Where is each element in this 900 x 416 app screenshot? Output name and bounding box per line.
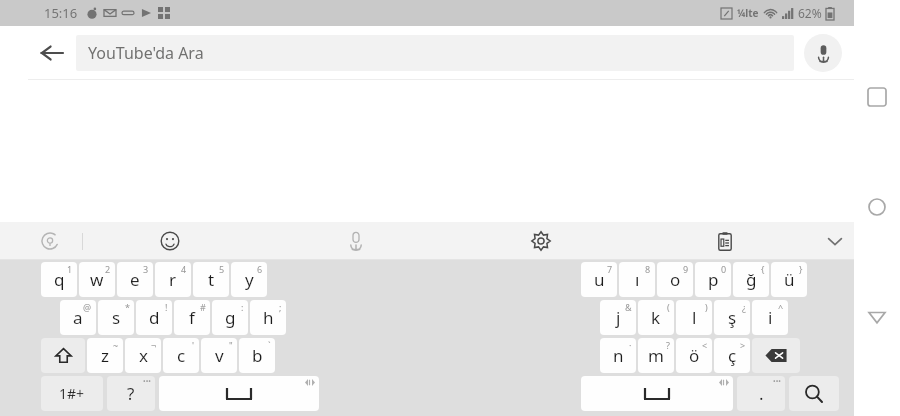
button[interactable]: y xyxy=(231,262,267,297)
staticText: z xyxy=(101,344,109,367)
staticText: @ xyxy=(83,301,92,313)
button[interactable]: f xyxy=(174,300,210,335)
staticText: c xyxy=(177,344,186,367)
staticText: ? xyxy=(127,382,135,405)
staticText: ; xyxy=(279,301,282,313)
staticText: 5 xyxy=(219,263,225,275)
button[interactable]: Back xyxy=(28,29,76,77)
button[interactable]: t xyxy=(193,262,229,297)
button[interactable]: w xyxy=(79,262,115,297)
staticText: m xyxy=(648,344,664,367)
staticText: u xyxy=(594,268,605,291)
staticText: i xyxy=(768,306,773,329)
button[interactable]: v xyxy=(201,338,237,373)
button[interactable]: h xyxy=(250,300,286,335)
staticText: r xyxy=(169,268,177,291)
button[interactable]: q xyxy=(41,262,77,297)
staticText: 2 xyxy=(105,263,111,275)
staticText: q xyxy=(54,268,65,291)
button[interactable]: i xyxy=(752,300,788,335)
button[interactable]: Space xyxy=(159,376,319,411)
staticText: ? xyxy=(666,339,670,351)
button[interactable]: z xyxy=(87,338,123,373)
button[interactable]: Hide keyboard xyxy=(821,227,849,255)
staticText: 4 xyxy=(181,263,187,275)
button[interactable]: m xyxy=(638,338,674,373)
button[interactable]: x xyxy=(125,338,161,373)
button[interactable]: k xyxy=(638,300,674,335)
staticText: } xyxy=(799,263,803,275)
staticText: ¼lte xyxy=(737,6,759,20)
button[interactable]: Clipboard xyxy=(711,227,739,255)
staticText: YouTube'da Ara xyxy=(88,42,204,64)
button[interactable]: a xyxy=(60,300,96,335)
button[interactable]: Voice input xyxy=(342,227,370,255)
staticText: 15:16 xyxy=(44,4,78,22)
button[interactable]: p xyxy=(695,262,731,297)
button[interactable]: n xyxy=(600,338,636,373)
button[interactable]: Language xyxy=(36,227,64,255)
staticText: ¿ xyxy=(742,301,746,313)
staticText: v xyxy=(215,344,224,367)
staticText: n xyxy=(613,344,624,367)
staticText: * xyxy=(125,301,130,313)
staticText: · xyxy=(629,339,632,351)
button[interactable]: Space xyxy=(581,376,733,411)
staticText: x xyxy=(139,344,148,367)
staticText: ^ xyxy=(778,301,784,313)
staticText: ş xyxy=(728,306,737,329)
staticText: . xyxy=(759,382,764,405)
staticText: # xyxy=(200,301,206,313)
button[interactable]: Shift xyxy=(41,338,85,373)
button[interactable]: ö xyxy=(676,338,712,373)
button[interactable]: ğ xyxy=(733,262,769,297)
staticText: k xyxy=(651,306,661,329)
staticText: g xyxy=(225,306,236,329)
staticText: : xyxy=(241,301,244,313)
staticText: ü xyxy=(784,268,795,291)
staticText: 62% xyxy=(798,5,822,21)
staticText: ö xyxy=(689,344,700,367)
button[interactable]: Voice search xyxy=(804,34,842,72)
staticText: ! xyxy=(165,301,168,313)
staticText: f xyxy=(189,306,195,329)
button[interactable]: j xyxy=(600,300,636,335)
staticText: b xyxy=(252,344,263,367)
button[interactable]: e xyxy=(117,262,153,297)
button[interactable]: c xyxy=(163,338,199,373)
button[interactable]: r xyxy=(155,262,191,297)
staticText: " xyxy=(229,339,233,351)
staticText: < xyxy=(702,339,708,351)
button[interactable]: g xyxy=(212,300,248,335)
button[interactable]: 1#+ xyxy=(41,376,103,411)
button[interactable]: ş xyxy=(714,300,750,335)
button[interactable]: . xyxy=(737,376,785,411)
button[interactable]: YouTube'da Ara xyxy=(76,35,794,71)
staticText: ~ xyxy=(113,339,119,351)
button[interactable]: u xyxy=(581,262,617,297)
button[interactable]: ü xyxy=(771,262,807,297)
button[interactable]: Search xyxy=(789,376,839,411)
staticText: a xyxy=(73,306,83,329)
button[interactable]: d xyxy=(136,300,172,335)
button[interactable]: l xyxy=(676,300,712,335)
staticText: { xyxy=(761,263,765,275)
staticText: l xyxy=(692,306,697,329)
button[interactable]: Emoji xyxy=(156,227,184,255)
button[interactable]: ç xyxy=(714,338,750,373)
button[interactable]: o xyxy=(657,262,693,297)
button[interactable]: Backspace xyxy=(752,338,800,373)
button[interactable]: b xyxy=(239,338,275,373)
staticText: y xyxy=(245,268,254,291)
staticText: ı xyxy=(635,268,640,291)
staticText: ğ xyxy=(746,268,757,291)
staticText: h xyxy=(263,306,274,329)
staticText: ' xyxy=(192,339,195,351)
button[interactable]: Back xyxy=(860,300,894,334)
button[interactable]: ? xyxy=(107,376,155,411)
button[interactable]: Recent apps xyxy=(860,80,894,114)
button[interactable]: Settings xyxy=(527,227,555,255)
button[interactable]: s xyxy=(98,300,134,335)
button[interactable]: Home xyxy=(860,190,894,224)
button[interactable]: ı xyxy=(619,262,655,297)
